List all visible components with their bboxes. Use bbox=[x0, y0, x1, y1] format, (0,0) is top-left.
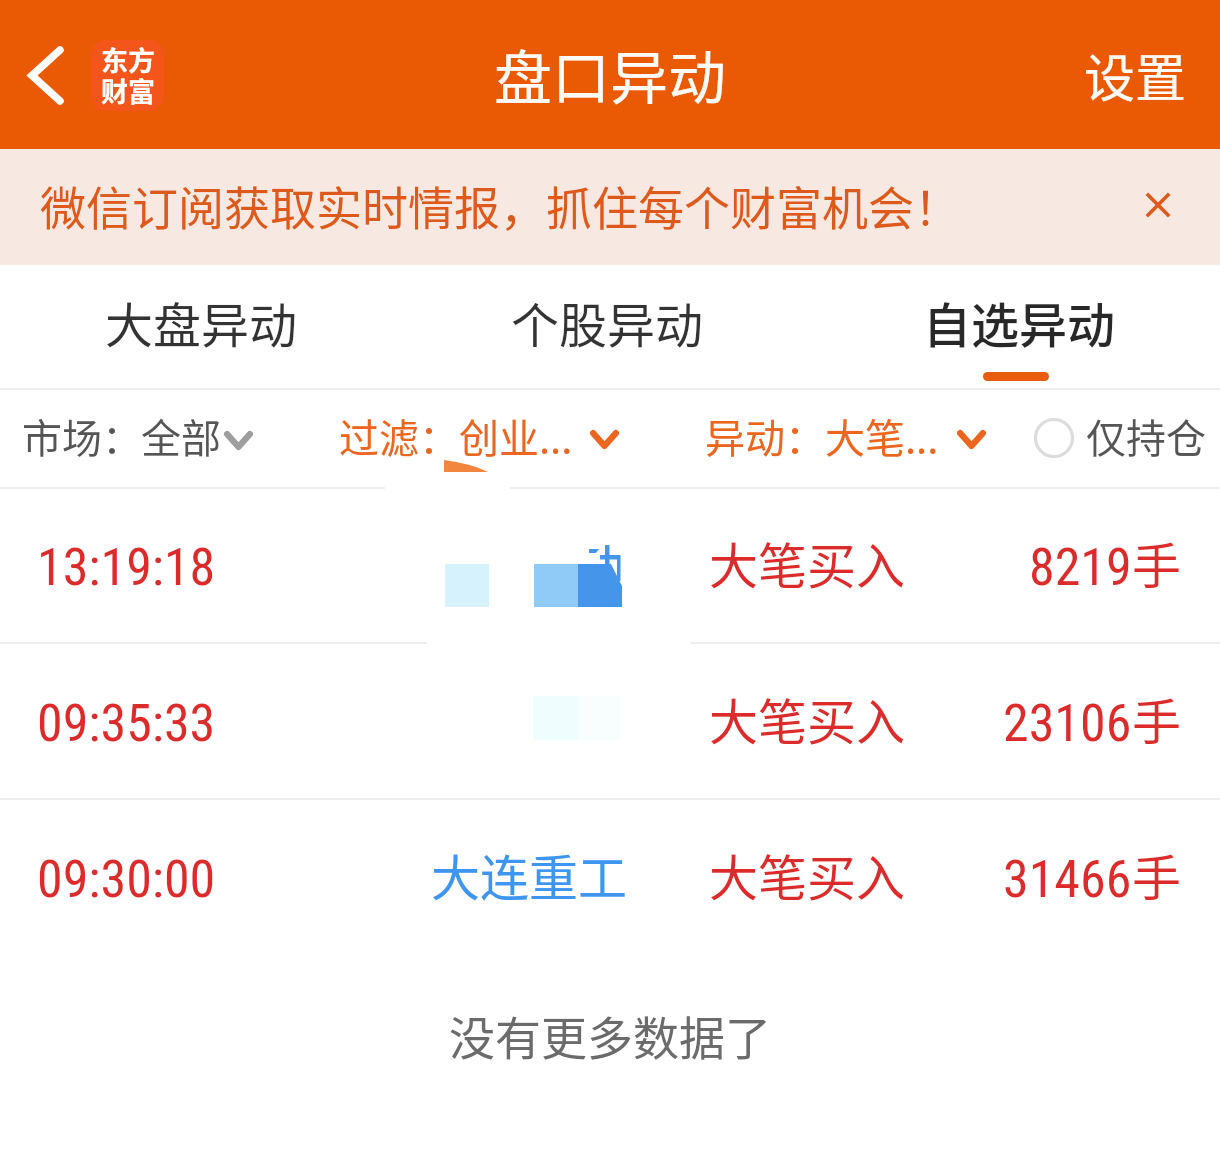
button[interactable]: 东方财富 bbox=[91, 40, 164, 111]
staticText: 大笔买入 bbox=[709, 527, 906, 598]
staticText: 大连重工 bbox=[431, 839, 628, 910]
button[interactable]: 09:30:00 bbox=[0, 801, 1220, 956]
button[interactable]: Close banner bbox=[1120, 173, 1195, 237]
staticText: 个股异动 bbox=[511, 287, 704, 357]
staticText: 仅持仓 bbox=[1086, 407, 1206, 465]
button[interactable]: Back bbox=[0, 16, 92, 134]
button[interactable]: 仅持仓 bbox=[1024, 394, 1214, 478]
staticText: 23106 bbox=[1003, 693, 1132, 754]
staticText: 13:19:18 bbox=[37, 537, 216, 598]
staticText: 财富 bbox=[101, 71, 155, 110]
staticText: 盘口异动 bbox=[494, 32, 727, 116]
staticText: 大笔买入 bbox=[709, 839, 906, 910]
staticText: 微信订阅获取实时情报，抓住每个财富机会！ bbox=[40, 172, 960, 239]
staticText: 31466 bbox=[1003, 849, 1132, 910]
staticText: 手 bbox=[1132, 839, 1182, 910]
staticText: 市场： bbox=[22, 407, 142, 465]
button[interactable]: 13:19:18 bbox=[0, 489, 1220, 644]
button[interactable]: 设置 bbox=[1059, 20, 1211, 130]
button[interactable]: 自选异动 bbox=[869, 265, 1169, 386]
staticText: 手 bbox=[1132, 527, 1182, 598]
button[interactable]: 个股异动 bbox=[457, 265, 757, 386]
staticText: 全部 bbox=[141, 407, 221, 465]
staticText: 09:35:33 bbox=[37, 693, 216, 754]
staticText: 手 bbox=[1132, 683, 1182, 754]
staticText: 没有更多数据了 bbox=[449, 1002, 771, 1069]
staticText: 东方 bbox=[101, 40, 155, 79]
staticText: 异动：大笔... bbox=[705, 407, 939, 465]
button[interactable]: 市场： bbox=[8, 394, 270, 478]
staticText: 大笔买入 bbox=[709, 683, 906, 754]
staticText: 09:30:00 bbox=[37, 849, 216, 910]
staticText: 设置 bbox=[1084, 38, 1187, 112]
staticText: 自选异动 bbox=[923, 287, 1116, 357]
staticText: 8219 bbox=[1029, 537, 1132, 598]
button[interactable]: 异动：大笔... bbox=[691, 394, 1001, 478]
button[interactable]: 09:35:33 bbox=[0, 645, 1220, 800]
button[interactable]: 过滤：创业... bbox=[325, 394, 635, 478]
staticText: 大盘异动 bbox=[105, 287, 298, 357]
button[interactable]: 大盘异动 bbox=[51, 265, 351, 386]
staticText: 过滤：创业... bbox=[339, 407, 573, 465]
